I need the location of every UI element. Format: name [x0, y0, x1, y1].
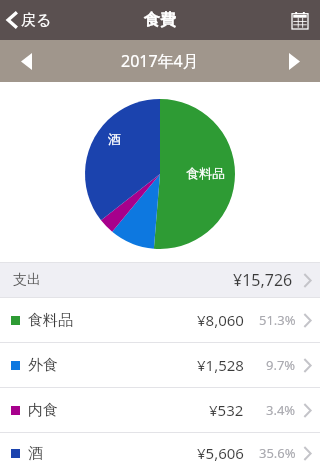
- staticText: ¥15,726: [233, 269, 293, 291]
- staticText: 戻る: [21, 11, 52, 30]
- staticText: 酒: [108, 131, 121, 147]
- staticText: 食料品: [186, 165, 225, 181]
- staticText: 2017年4月: [121, 50, 199, 72]
- button[interactable]: 内食: [0, 388, 320, 432]
- button[interactable]: Calendar: [280, 0, 320, 40]
- staticText: ¥532: [209, 400, 244, 420]
- button[interactable]: Previous month: [0, 40, 52, 82]
- staticText: 内食: [28, 401, 58, 420]
- staticText: ¥1,528: [197, 355, 244, 375]
- button[interactable]: 支出: [0, 263, 320, 297]
- staticText: 酒: [28, 444, 43, 463]
- button[interactable]: 戻る: [0, 0, 64, 40]
- staticText: 食料品: [28, 311, 73, 330]
- staticText: 9.7%: [266, 356, 296, 374]
- staticText: ¥5,606: [197, 443, 244, 463]
- staticText: ¥8,060: [197, 310, 244, 330]
- staticText: 外食: [28, 356, 58, 375]
- button[interactable]: 酒: [0, 433, 320, 473]
- staticText: 3.4%: [266, 401, 296, 419]
- staticText: 支出: [13, 271, 41, 289]
- button[interactable]: 外食: [0, 343, 320, 387]
- button[interactable]: Next month: [268, 40, 320, 82]
- staticText: 51.3%: [259, 311, 296, 329]
- button[interactable]: 食料品: [0, 298, 320, 342]
- staticText: 食費: [144, 10, 176, 30]
- staticText: 35.6%: [259, 444, 296, 462]
